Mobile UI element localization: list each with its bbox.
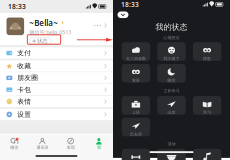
staticText: 活动	[167, 141, 175, 146]
button[interactable]: 朋友圈	[0, 72, 113, 84]
button[interactable]: 发呆	[122, 64, 150, 82]
staticText: 表情	[17, 97, 31, 106]
button[interactable]: 支付	[0, 47, 113, 59]
staticText: 设置	[17, 110, 31, 119]
button[interactable]: 吃饭	[157, 149, 186, 160]
button[interactable]: 睡觉	[157, 64, 186, 82]
button[interactable]: 上班	[122, 96, 150, 115]
button[interactable]: 设置	[0, 109, 113, 120]
staticText: 支付	[17, 49, 31, 57]
staticText: 状态	[37, 38, 47, 44]
button[interactable]: 出去浪	[122, 118, 150, 136]
staticText: 摸鱼	[203, 56, 211, 61]
staticText: 上班	[132, 110, 140, 115]
staticText: 在人间凑数	[126, 56, 146, 61]
staticText: 微信	[10, 145, 18, 150]
staticText: 心情想法	[163, 35, 179, 40]
button[interactable]: 摸鱼	[193, 42, 221, 61]
staticText: 收藏	[17, 62, 31, 70]
staticText: 睡觉	[167, 78, 175, 83]
button[interactable]: 在人间凑数	[122, 42, 150, 61]
button[interactable]: 状态	[29, 37, 51, 45]
button[interactable]: 卡包	[0, 84, 113, 95]
staticText: 我	[97, 145, 101, 150]
staticText: 学习	[203, 110, 211, 115]
button[interactable]: 我	[85, 137, 113, 150]
staticText: ~Bella~	[29, 17, 58, 28]
button[interactable]: Close	[117, 11, 128, 18]
staticText: 18:33	[8, 2, 26, 11]
button[interactable]: 出差	[157, 96, 186, 115]
staticText: 我太难了	[163, 56, 179, 61]
button[interactable]: 听歌	[193, 149, 221, 160]
staticText: 出差	[167, 110, 175, 115]
staticText: 朋友圈	[17, 74, 38, 82]
staticText: 发现	[67, 145, 75, 150]
button[interactable]: 微信	[0, 137, 28, 150]
staticText: 18:33	[121, 0, 139, 9]
button[interactable]: 我太难了	[157, 42, 186, 61]
button[interactable]: 收藏	[0, 60, 113, 72]
button[interactable]: 发现	[56, 137, 85, 150]
staticText: 卡包	[17, 86, 31, 94]
button[interactable]: 学习	[193, 96, 221, 115]
button[interactable]: 运动	[122, 149, 150, 160]
staticText: 发呆	[132, 78, 140, 83]
staticText: 出去浪	[130, 132, 142, 137]
button[interactable]: 表情	[0, 96, 113, 107]
staticText: 微信号: bella_0513	[29, 29, 71, 36]
staticText: 工作学习	[163, 88, 179, 93]
staticText: 我的状态	[155, 22, 187, 32]
button[interactable]: 通讯录	[28, 137, 56, 150]
staticText: 通讯录	[36, 145, 48, 150]
